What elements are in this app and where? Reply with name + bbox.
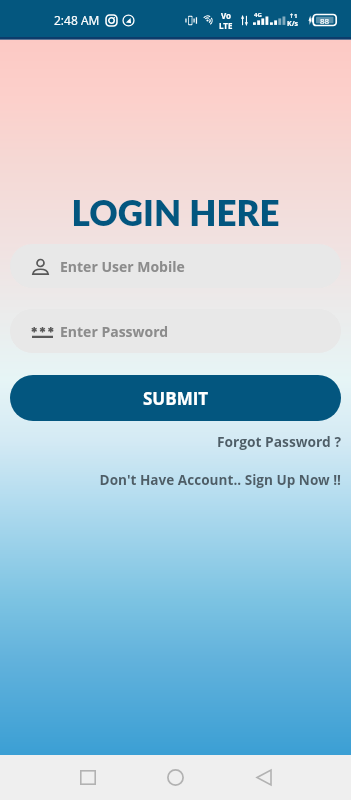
staticText: 2:48 AM [54, 12, 100, 28]
button[interactable]: Enter Password [10, 309, 341, 353]
staticText: K/s [287, 19, 299, 29]
button[interactable]: Forgot Password ? [0, 432, 351, 451]
staticText: LOGIN HERE [0, 191, 351, 233]
button[interactable]: Back [240, 755, 287, 800]
staticText: Enter User Mobile [60, 257, 185, 276]
staticText: ↑1 [289, 12, 298, 20]
staticText: SUBMIT [143, 387, 209, 410]
button[interactable]: Don't Have Account.. Sign Up Now !! [0, 470, 351, 489]
button[interactable]: Home [152, 755, 199, 800]
staticText: LTE [219, 20, 233, 31]
staticText: 88 [320, 15, 330, 26]
staticText: Enter Password [60, 322, 169, 341]
staticText: Vo [221, 10, 231, 21]
button[interactable]: Recent apps [64, 755, 111, 800]
button[interactable]: SUBMIT [10, 375, 341, 421]
button[interactable]: Enter User Mobile [10, 244, 341, 288]
staticText: 4G [254, 11, 262, 19]
